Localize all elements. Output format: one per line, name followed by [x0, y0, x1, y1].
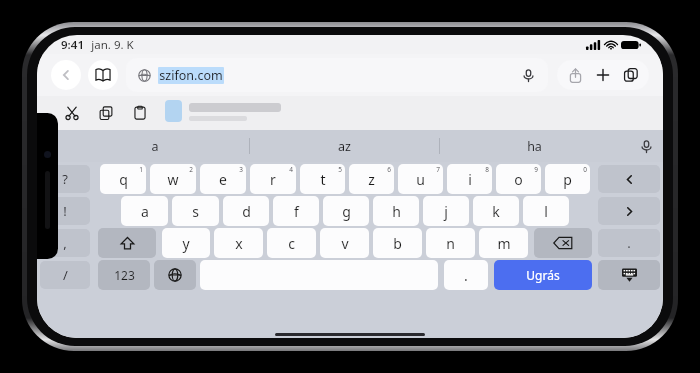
staticText: ? — [62, 170, 68, 188]
button[interactable]: h — [373, 196, 419, 226]
staticText: g — [342, 202, 351, 221]
button[interactable]: Hide keyboard — [598, 260, 660, 290]
button[interactable]: . — [444, 260, 488, 290]
button[interactable]: Back — [51, 60, 81, 90]
button[interactable]: c — [267, 228, 316, 258]
button[interactable]: e — [200, 164, 246, 194]
staticText: az — [338, 138, 351, 155]
staticText: . — [464, 266, 468, 285]
staticText: 9:41 — [61, 37, 84, 53]
button[interactable]: ? — [40, 165, 90, 193]
button[interactable]: Ugrás — [494, 260, 592, 290]
staticText: ha — [527, 138, 542, 155]
button[interactable]: Voice search — [518, 65, 538, 85]
button[interactable]: m — [479, 228, 528, 258]
staticText: w — [167, 170, 179, 189]
staticText: 7 — [436, 165, 440, 174]
staticText: a — [151, 138, 159, 155]
staticText: ! — [63, 202, 67, 220]
button[interactable]: Copy — [93, 100, 119, 126]
button[interactable]: Change keyboard — [154, 260, 196, 290]
button[interactable]: k — [473, 196, 519, 226]
button[interactable]: d — [223, 196, 269, 226]
staticText: d — [242, 202, 251, 221]
button[interactable]: Paste — [127, 100, 153, 126]
staticText: n — [446, 234, 455, 253]
staticText: 1 — [139, 165, 143, 174]
button[interactable]: Cut — [59, 100, 85, 126]
staticText: l — [544, 202, 548, 221]
staticText: y — [182, 234, 190, 253]
button[interactable]: Tabs — [617, 61, 645, 89]
staticText: r — [270, 170, 276, 189]
staticText: t — [320, 170, 326, 189]
staticText: 9 — [534, 165, 538, 174]
staticText: o — [514, 170, 523, 189]
button[interactable]: az — [250, 130, 439, 162]
staticText: , — [63, 234, 67, 252]
button[interactable]: f — [273, 196, 319, 226]
staticText: h — [392, 202, 401, 221]
button[interactable]: Bookmarks — [88, 60, 118, 90]
staticText: jan. 9. K — [91, 37, 134, 53]
staticText: 4 — [289, 165, 293, 174]
button[interactable]: o — [496, 164, 541, 194]
button[interactable]: i — [447, 164, 492, 194]
staticText: e — [219, 170, 227, 189]
button[interactable]: / — [40, 261, 90, 289]
staticText: 5 — [338, 165, 342, 174]
staticText: m — [497, 234, 511, 253]
staticText: . — [627, 234, 631, 252]
staticText: z — [368, 170, 375, 189]
staticText: 8 — [485, 165, 489, 174]
button[interactable]: ! — [40, 197, 90, 225]
staticText: a — [141, 202, 149, 221]
staticText: szifon.com — [159, 67, 223, 84]
button[interactable]: Next — [598, 197, 660, 225]
staticText: Ugrás — [526, 267, 560, 283]
staticText: 3 — [239, 165, 243, 174]
button[interactable]: ha — [440, 130, 629, 162]
staticText: u — [416, 170, 425, 189]
button[interactable]: b — [373, 228, 422, 258]
button[interactable]: Share — [561, 61, 589, 89]
button[interactable]: s — [172, 196, 219, 226]
button[interactable]: , — [40, 229, 90, 257]
staticText: 6 — [387, 165, 391, 174]
button[interactable]: j — [423, 196, 469, 226]
staticText: p — [563, 170, 572, 189]
staticText: 0 — [583, 165, 587, 174]
button[interactable]: n — [426, 228, 475, 258]
button[interactable]: szifon.com — [126, 58, 548, 92]
button[interactable]: t — [300, 164, 345, 194]
staticText: b — [393, 234, 402, 253]
button[interactable]: y — [162, 228, 210, 258]
button[interactable]: Shift — [98, 228, 156, 258]
button[interactable]: l — [523, 196, 569, 226]
button[interactable]: w — [150, 164, 196, 194]
staticText: i — [468, 170, 472, 189]
staticText: 2 — [189, 165, 193, 174]
button[interactable]: r — [250, 164, 296, 194]
staticText: 123 — [114, 267, 135, 283]
button[interactable]: v — [320, 228, 369, 258]
button[interactable]: z — [349, 164, 394, 194]
button[interactable]: g — [323, 196, 369, 226]
staticText: x — [235, 234, 243, 253]
staticText: c — [288, 234, 295, 253]
button[interactable]: . — [598, 229, 660, 257]
button[interactable]: q — [100, 164, 146, 194]
staticText: k — [492, 202, 500, 221]
button[interactable]: Dictation — [629, 130, 663, 162]
staticText: q — [119, 170, 128, 189]
button[interactable]: u — [398, 164, 443, 194]
button[interactable]: New tab — [589, 61, 617, 89]
button[interactable]: a — [121, 196, 168, 226]
button[interactable]: Backspace — [534, 228, 592, 258]
button[interactable]: a — [61, 130, 249, 162]
button[interactable]: x — [214, 228, 263, 258]
button[interactable]: p — [545, 164, 590, 194]
button[interactable]: 123 — [98, 260, 150, 290]
button[interactable]: Previous — [598, 165, 660, 193]
